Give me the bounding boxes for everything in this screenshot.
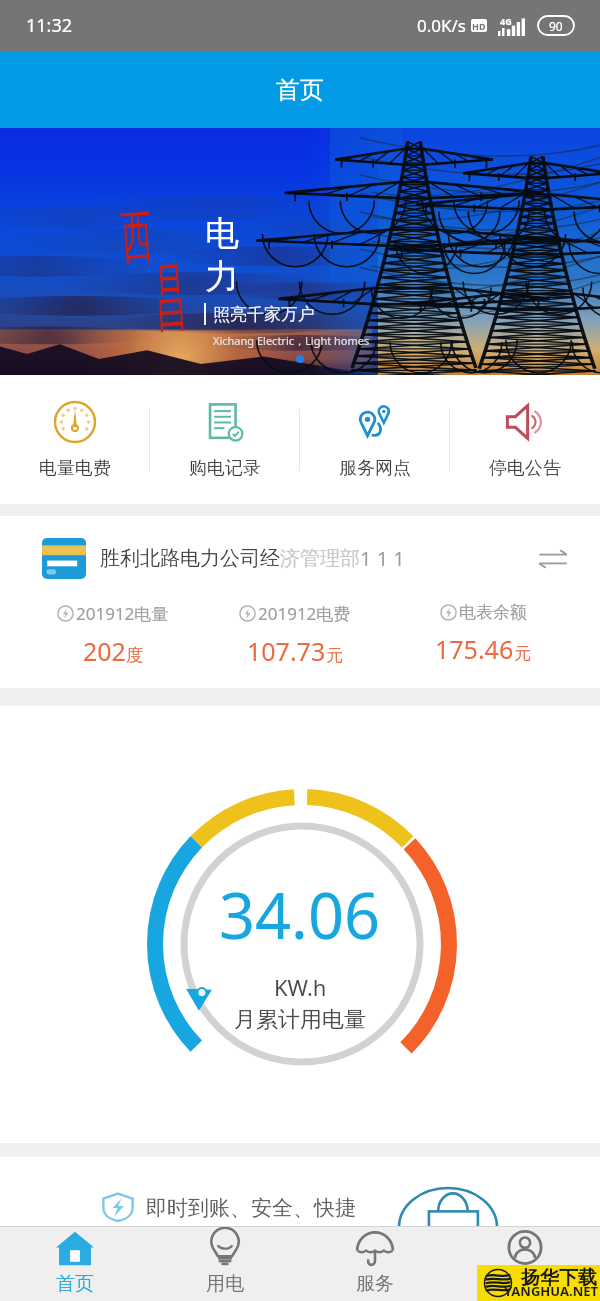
button[interactable]: 切换用户 (534, 540, 572, 578)
staticText: 11:32 (26, 13, 73, 38)
staticText: 元 (326, 645, 343, 666)
staticText: 照亮千家万户 (213, 304, 315, 325)
staticText: 月累计用电量 (234, 1006, 366, 1034)
staticText: Xichang Electric，Light homes (213, 333, 370, 348)
staticText: 度 (126, 645, 143, 666)
button[interactable]: 胜利北路电力公司经 (0, 516, 600, 688)
staticText: 胜利北路电力公司经 (100, 546, 280, 571)
button[interactable]: 服务网点 (300, 375, 450, 504)
staticText: 首页 (276, 75, 324, 105)
staticText: 201912电量 (76, 602, 169, 625)
staticText: 力 (205, 255, 239, 298)
button[interactable]: 停电公告 (450, 375, 600, 504)
button[interactable]: 购电记录 (150, 375, 300, 504)
staticText: 107.73 (247, 634, 326, 668)
button[interactable]: 用电 (150, 1226, 300, 1301)
staticText: 购电记录 (189, 457, 261, 480)
staticText: 服务 (356, 1272, 394, 1296)
staticText: 0.0K/s (417, 14, 466, 37)
staticText: 4G (500, 15, 512, 27)
staticText: 扬华下载 (521, 1266, 597, 1290)
button[interactable]: 首页 (0, 1226, 150, 1301)
staticText: KW.h (274, 972, 327, 1002)
staticText: 175.46 (435, 632, 514, 666)
staticText: 停电公告 (489, 457, 561, 480)
staticText: 电表余额 (459, 602, 527, 623)
staticText: 服务网点 (339, 457, 411, 480)
staticText: 202 (83, 634, 126, 668)
button[interactable]: 服务 (300, 1226, 450, 1301)
staticText: 201912电费 (258, 602, 351, 625)
button[interactable]: 电量电费 (0, 375, 150, 504)
staticText: 首页 (56, 1272, 94, 1296)
staticText: HD (472, 20, 486, 32)
staticText: 即时到账、安全、快捷 (146, 1195, 356, 1221)
staticText: 1 1 1 (360, 545, 405, 572)
staticText: 90 (549, 18, 563, 34)
button[interactable]: 我的 (450, 1226, 600, 1301)
staticText: 昌 (153, 248, 188, 344)
staticText: 电量电费 (39, 457, 111, 480)
staticText: 西 (119, 199, 154, 273)
staticText: 用电 (206, 1272, 244, 1296)
staticText: 电 (205, 212, 239, 255)
staticText: 济管理部 (280, 546, 360, 571)
staticText: 我的 (506, 1272, 544, 1296)
staticText: 34.06 (219, 872, 381, 958)
staticText: 元 (514, 643, 531, 664)
staticText: YANGHUA.NET (504, 1282, 598, 1300)
